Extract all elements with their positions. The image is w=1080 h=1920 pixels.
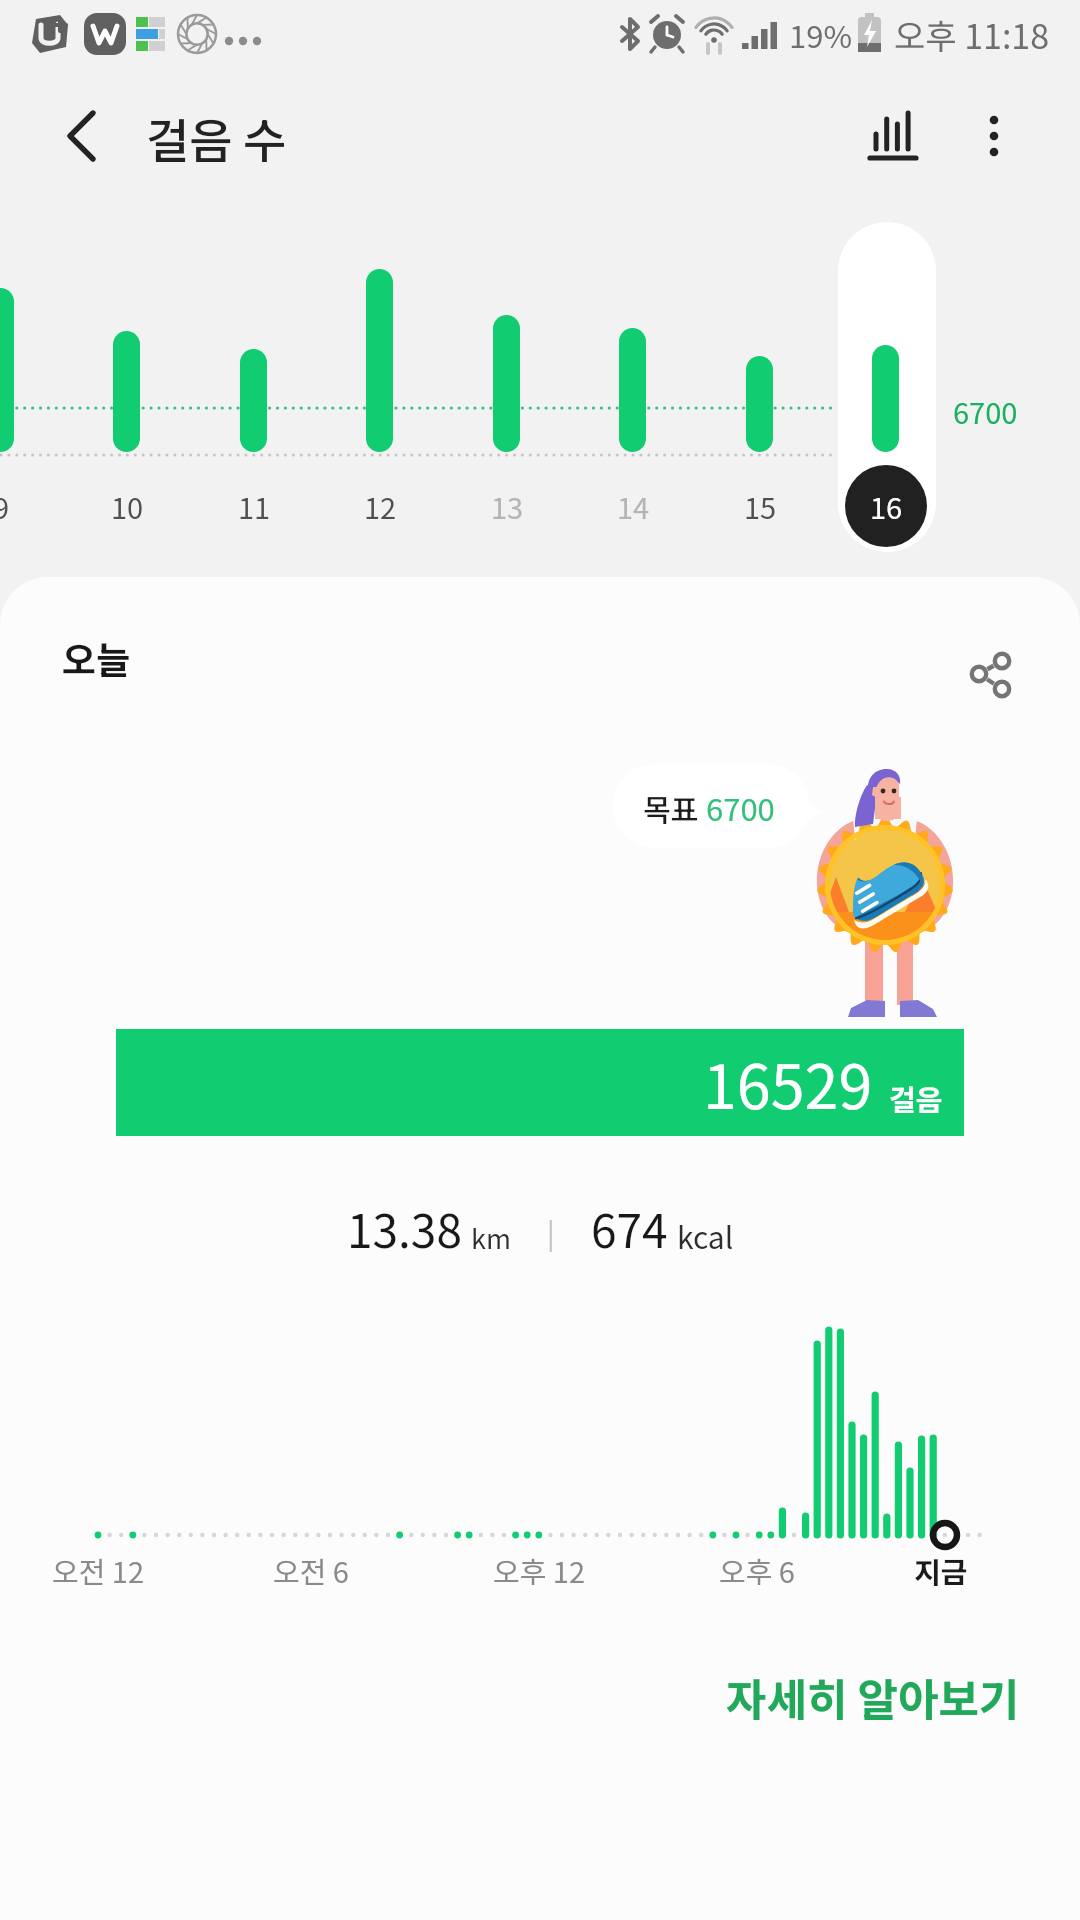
staticText: 11	[238, 485, 271, 527]
staticText: 674	[591, 1195, 668, 1262]
staticText: kcal	[677, 1214, 734, 1257]
staticText: 6700	[953, 390, 1018, 432]
button[interactable]: 자세히 알아보기	[718, 1657, 1028, 1737]
staticText: 16529	[703, 1038, 873, 1126]
staticText: 16	[870, 485, 903, 527]
button[interactable]: Share	[938, 619, 1024, 705]
staticText: 목표	[643, 786, 699, 829]
staticText: 오후 12	[493, 1549, 586, 1591]
staticText: 오전 6	[273, 1549, 349, 1591]
staticText: 오늘	[62, 631, 131, 685]
staticText: 9	[0, 485, 10, 527]
staticText: 오후 6	[719, 1549, 795, 1591]
staticText: 15	[744, 485, 777, 527]
staticText: 지금	[914, 1549, 968, 1591]
button[interactable]: Back	[43, 94, 127, 178]
button[interactable]: Chart	[852, 90, 936, 174]
staticText: 걸음	[889, 1077, 943, 1119]
staticText: 19%	[789, 12, 852, 57]
staticText: 12	[364, 485, 397, 527]
staticText: 6700	[706, 785, 775, 830]
staticText: |	[547, 1212, 555, 1253]
staticText: 걸음 수	[146, 103, 287, 171]
button[interactable]: More options	[952, 90, 1036, 174]
staticText: 13	[491, 485, 524, 527]
staticText: 14	[617, 485, 650, 527]
staticText: 13.38	[347, 1195, 462, 1262]
staticText: km	[471, 1218, 511, 1257]
staticText: 10	[111, 485, 144, 527]
staticText: 자세히 알아보기	[726, 1665, 1020, 1729]
staticText: 오전 12	[52, 1549, 145, 1591]
staticText: 오후 11:18	[894, 10, 1050, 59]
